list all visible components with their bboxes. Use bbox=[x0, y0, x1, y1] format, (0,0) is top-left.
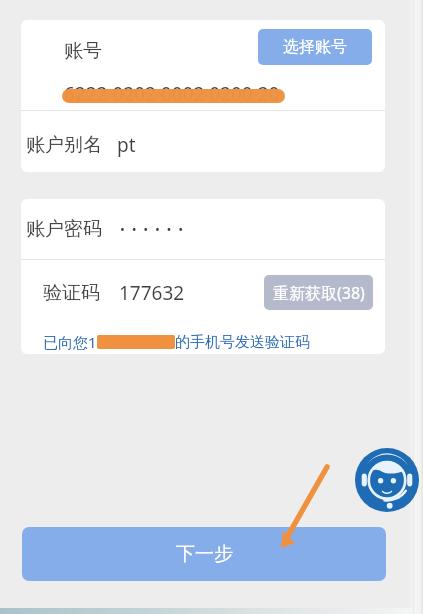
staticText: 账户别名 bbox=[26, 133, 102, 157]
staticText: 下一步 bbox=[176, 542, 233, 566]
staticText: 选择账号 bbox=[283, 37, 347, 57]
button[interactable]: 下一步 bbox=[22, 527, 386, 581]
staticText: 的手机号发送验证码 bbox=[175, 333, 310, 352]
button[interactable]: Customer service bbox=[355, 448, 419, 512]
button[interactable]: 重新获取(38) bbox=[264, 275, 373, 310]
staticText: 6222 0202 0002 0200 20 bbox=[64, 81, 280, 107]
staticText: 账号 bbox=[64, 39, 102, 63]
staticText: pt bbox=[117, 132, 136, 158]
staticText: 账户密码 bbox=[26, 217, 102, 241]
staticText: 重新获取(38) bbox=[273, 282, 365, 304]
staticText: 验证码 bbox=[43, 281, 100, 305]
staticText: 177632 bbox=[119, 280, 185, 306]
staticText: • • • • • • bbox=[120, 220, 184, 238]
staticText: 已向您1 bbox=[43, 332, 97, 352]
button[interactable]: 选择账号 bbox=[258, 29, 372, 65]
